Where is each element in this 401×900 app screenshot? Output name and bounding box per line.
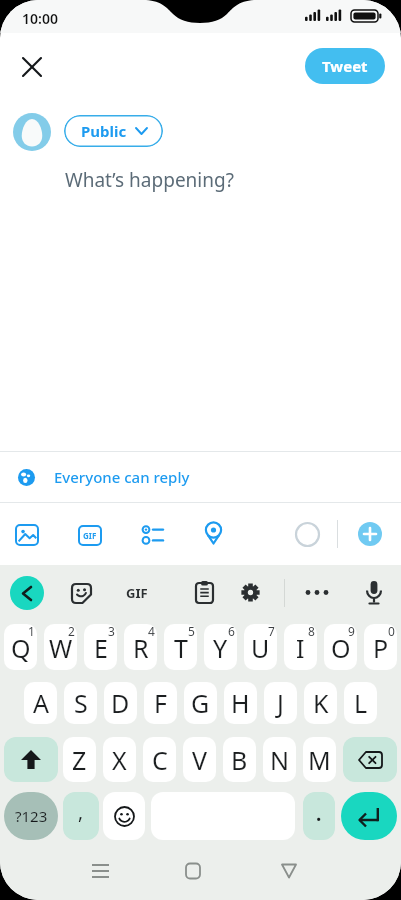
button[interactable]: GIF [120, 579, 154, 607]
staticText: R [133, 631, 149, 665]
button[interactable]: T [164, 624, 197, 670]
button[interactable]: V [183, 737, 216, 782]
button[interactable]: M [303, 737, 336, 782]
staticText: D [111, 686, 130, 720]
staticText: 7 [268, 624, 275, 639]
staticText: P [373, 631, 389, 665]
button[interactable]: X [103, 737, 136, 782]
button[interactable]: I [284, 624, 317, 670]
button[interactable]: G [184, 682, 217, 724]
staticText: A [33, 686, 49, 720]
button[interactable]: W [44, 624, 77, 670]
button[interactable]: Tweet [305, 48, 385, 84]
button[interactable] [343, 737, 397, 782]
staticText: . [316, 801, 322, 827]
button[interactable]: A [24, 682, 57, 724]
staticText: X [112, 743, 127, 777]
staticText: 1 [28, 624, 35, 639]
staticText: F [154, 686, 167, 720]
staticText: GIF [126, 584, 148, 602]
staticText: E [94, 631, 108, 665]
button[interactable]: N [263, 737, 296, 782]
staticText: 3 [108, 624, 115, 639]
staticText: 5 [188, 624, 195, 639]
staticText: M [308, 743, 331, 777]
staticText: V [192, 743, 208, 777]
staticText: Y [213, 631, 228, 665]
staticText: Z [72, 743, 87, 777]
button[interactable]: D [104, 682, 137, 724]
button[interactable]: , [63, 792, 99, 840]
button[interactable]: L [344, 682, 377, 724]
button[interactable] [239, 581, 261, 603]
button[interactable]: GIF [77, 522, 103, 548]
button[interactable] [192, 580, 216, 604]
button[interactable]: . [303, 792, 335, 840]
button[interactable]: J [264, 682, 297, 724]
button[interactable]: U [244, 624, 277, 670]
staticText: Public [81, 121, 127, 141]
staticText: T [174, 631, 188, 665]
button[interactable] [302, 580, 332, 604]
button[interactable] [14, 522, 40, 548]
button[interactable]: Q [4, 624, 37, 670]
staticText: H [231, 686, 250, 720]
staticText: GIF [83, 530, 97, 541]
staticText: Tweet [322, 56, 368, 76]
staticText: 0 [388, 624, 395, 639]
staticText: Everyone can reply [54, 467, 190, 487]
button[interactable]: Public [64, 115, 163, 147]
button[interactable]: C [143, 737, 176, 782]
button[interactable] [70, 582, 92, 604]
staticText: What’s happening? [65, 167, 234, 193]
button[interactable] [358, 522, 382, 546]
button[interactable]: K [304, 682, 337, 724]
staticText: W [49, 631, 73, 665]
button[interactable]: S [64, 682, 97, 724]
staticText: C [152, 743, 168, 777]
staticText: U [251, 631, 270, 665]
button[interactable] [362, 578, 386, 608]
staticText: , [78, 799, 84, 825]
staticText: 6 [228, 624, 235, 639]
staticText: 8 [308, 624, 315, 639]
button[interactable]: Everyone can reply [0, 452, 401, 502]
staticText: K [313, 686, 329, 720]
staticText: B [231, 743, 248, 777]
button[interactable]: P [364, 624, 397, 670]
staticText: G [191, 686, 210, 720]
button[interactable]: O [324, 624, 357, 670]
staticText: 9 [348, 624, 355, 639]
button[interactable]: Y [204, 624, 237, 670]
staticText: L [354, 686, 368, 720]
staticText: N [270, 743, 290, 777]
staticText: 2 [68, 624, 75, 639]
button[interactable]: ?123 [4, 792, 58, 840]
button[interactable]: R [124, 624, 157, 670]
staticText: O [331, 631, 351, 665]
button[interactable] [200, 520, 226, 546]
button[interactable]: F [144, 682, 177, 724]
button[interactable] [139, 522, 165, 548]
button[interactable] [103, 792, 145, 840]
staticText: I [296, 631, 305, 665]
staticText: Q [11, 631, 31, 665]
button[interactable]: E [84, 624, 117, 670]
staticText: 10:00 [22, 9, 58, 28]
button[interactable]: B [223, 737, 256, 782]
staticText: S [74, 686, 88, 720]
staticText: 4 [148, 624, 155, 639]
button[interactable] [4, 737, 58, 782]
button[interactable]: Z [63, 737, 96, 782]
staticText: ?123 [15, 806, 48, 826]
staticText: J [277, 686, 284, 720]
button[interactable] [14, 49, 50, 85]
button[interactable]: H [224, 682, 257, 724]
button[interactable] [341, 792, 397, 840]
button[interactable] [10, 576, 44, 610]
